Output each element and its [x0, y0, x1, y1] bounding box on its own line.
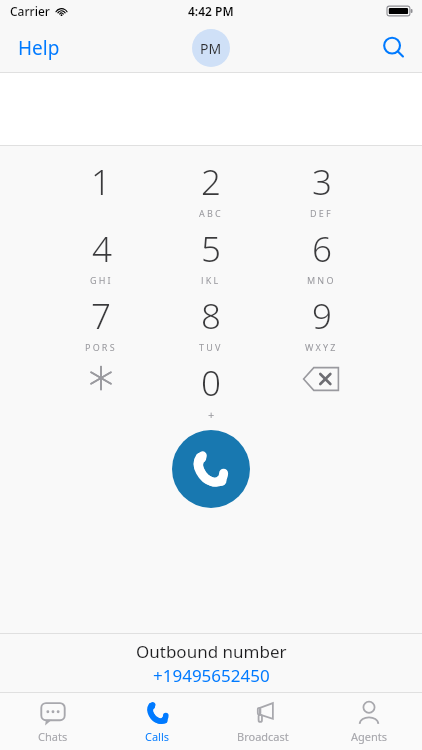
button[interactable]: 7: [46, 292, 156, 351]
staticText: 1: [91, 158, 111, 206]
button[interactable]: 2: [156, 158, 266, 217]
staticText: +: [208, 407, 215, 418]
staticText: MNO: [307, 274, 336, 284]
button[interactable]: PM: [192, 29, 230, 67]
staticText: 9: [312, 292, 332, 340]
button[interactable]: Calls: [105, 693, 210, 750]
button[interactable]: Star: [46, 359, 156, 418]
staticText: JKL: [201, 274, 221, 284]
staticText: 4: [92, 225, 112, 273]
button[interactable]: Chats: [0, 693, 105, 750]
button[interactable]: Call: [172, 430, 250, 508]
button[interactable]: Agents: [316, 693, 422, 750]
button[interactable]: Search: [366, 26, 422, 70]
staticText: Agents: [351, 729, 388, 744]
button[interactable]: 3: [266, 158, 376, 217]
staticText: 0: [201, 359, 221, 407]
button[interactable]: Backspace: [266, 359, 376, 418]
button[interactable]: Help: [0, 25, 78, 71]
button[interactable]: 0: [156, 359, 266, 418]
staticText: TUV: [199, 341, 223, 351]
staticText: Broadcast: [237, 729, 289, 744]
button[interactable]: 6: [266, 225, 376, 284]
staticText: ABC: [199, 207, 223, 217]
staticText: GHI: [90, 274, 113, 284]
staticText: Calls: [145, 729, 170, 744]
staticText: 8: [201, 292, 221, 340]
button[interactable]: 4: [46, 225, 156, 284]
button[interactable]: Outbound number: [0, 634, 422, 692]
staticText: Carrier: [10, 3, 50, 19]
staticText: Outbound number: [136, 640, 287, 663]
button[interactable]: 5: [156, 225, 266, 284]
button[interactable]: 1: [46, 158, 156, 217]
staticText: 4:42 PM: [188, 3, 234, 19]
staticText: Chats: [38, 729, 68, 744]
staticText: 3: [312, 158, 332, 206]
staticText: 6: [312, 225, 332, 273]
staticText: +19495652450: [153, 664, 270, 687]
button[interactable]: 8: [156, 292, 266, 351]
button[interactable]: Broadcast: [210, 693, 316, 750]
staticText: 5: [201, 225, 221, 273]
staticText: DEF: [310, 207, 333, 217]
staticText: Help: [18, 35, 60, 61]
staticText: 2: [201, 158, 221, 206]
staticText: 7: [91, 292, 111, 340]
button[interactable]: 9: [266, 292, 376, 351]
staticText: WXYZ: [305, 341, 338, 351]
staticText: PQRS: [85, 341, 117, 351]
staticText: PM: [200, 39, 222, 58]
